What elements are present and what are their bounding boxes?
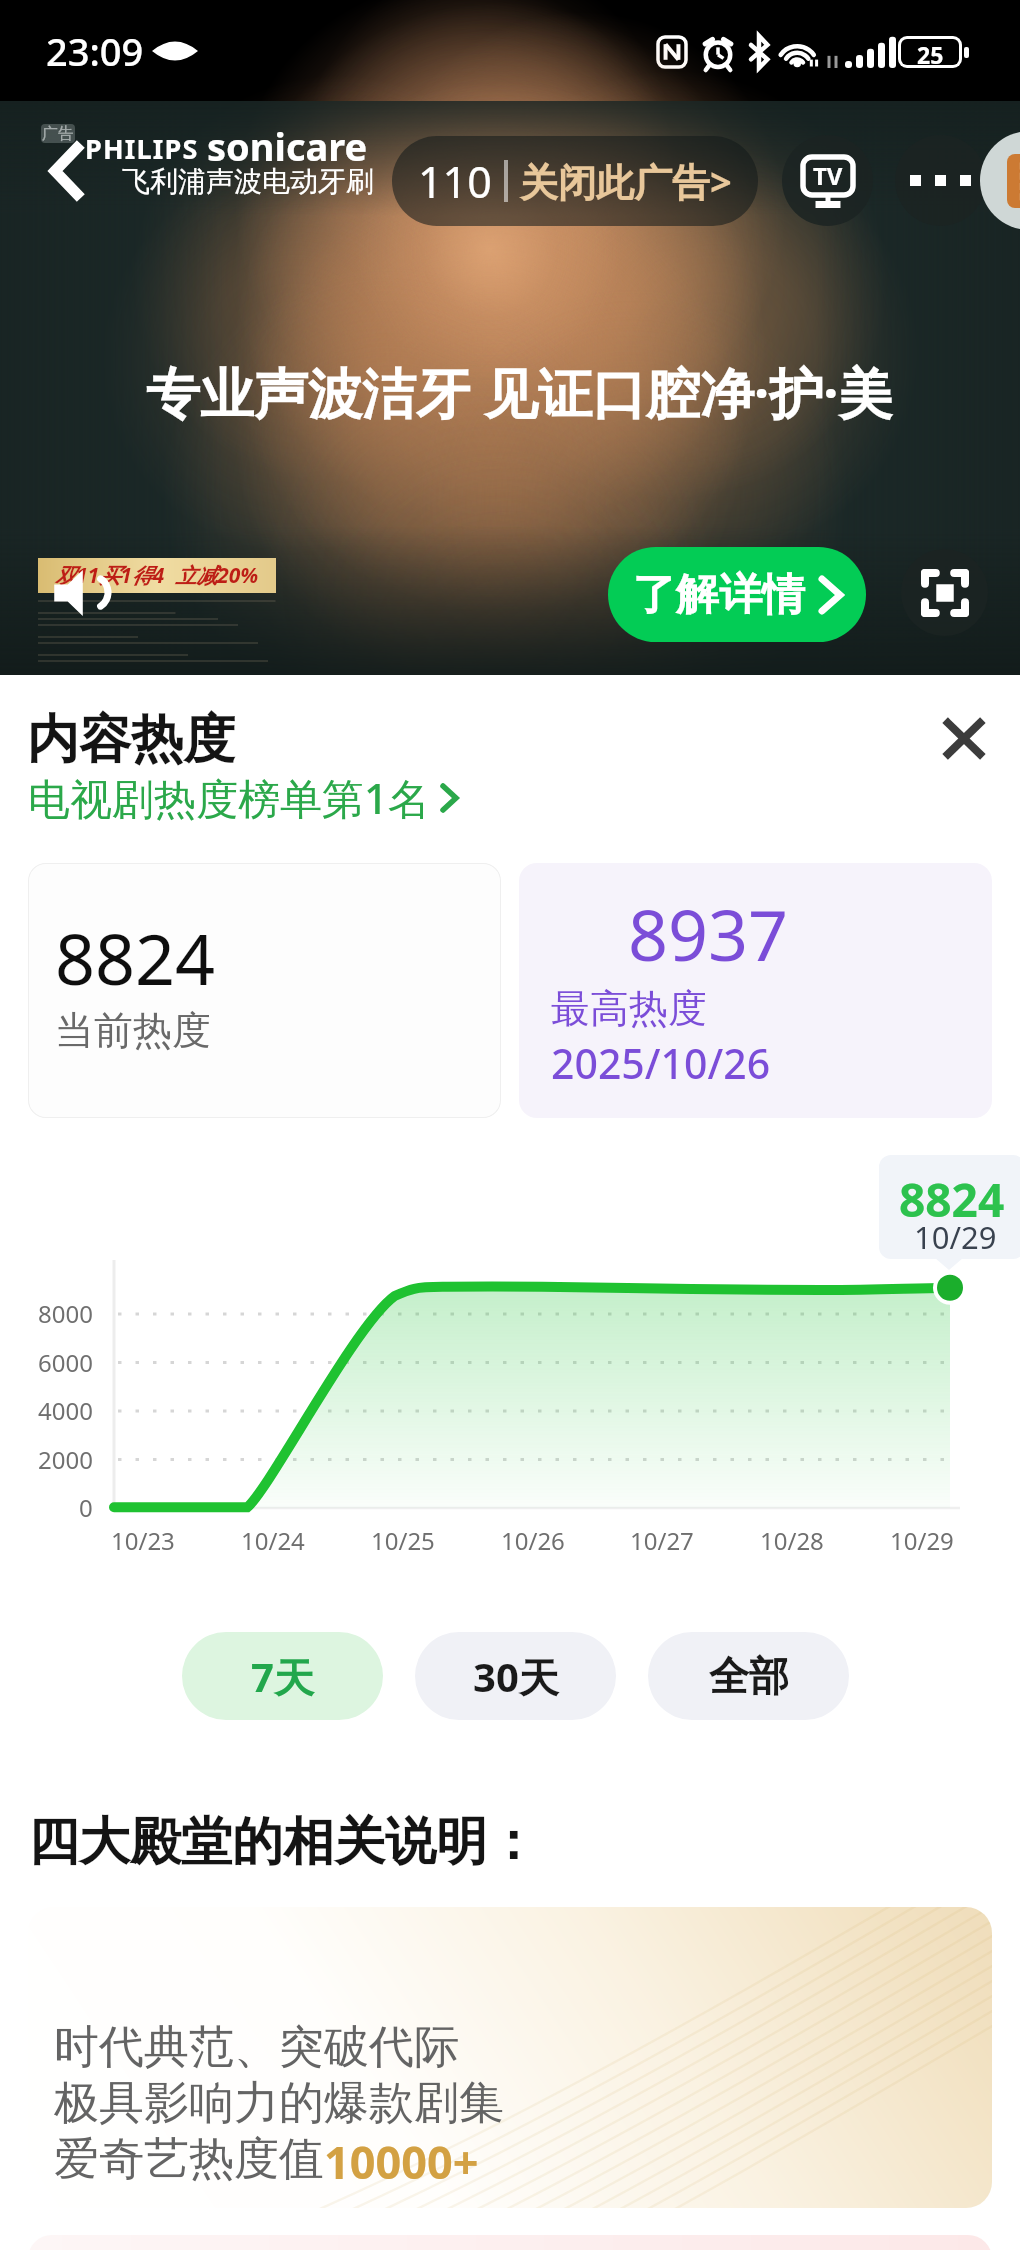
staticText: 飞利浦声波电动牙刷: [122, 164, 374, 199]
staticText: 10/25: [371, 1524, 435, 1557]
staticText: 双11买1得4 立减20%: [55, 561, 259, 590]
staticText: 关闭此广告>: [520, 155, 732, 207]
button[interactable]: Cast to TV: [782, 135, 873, 226]
staticText: 10/28: [760, 1524, 824, 1557]
button[interactable]: Close: [920, 694, 1008, 782]
staticText: 30天: [473, 1649, 559, 1704]
button[interactable]: Episode list: [980, 131, 1020, 230]
staticText: 当前热度: [55, 1006, 211, 1055]
button[interactable]: 8937: [519, 863, 992, 1118]
staticText: 爱奇艺热度值: [54, 2131, 324, 2188]
staticText: 2000: [38, 1443, 93, 1476]
staticText: 时代典范、突破代际: [54, 2019, 459, 2076]
staticText: 全部: [709, 1651, 789, 1701]
button[interactable]: 电视剧热度榜单第1名: [28, 769, 466, 826]
staticText: 电视剧热度榜单第1名: [28, 769, 431, 826]
staticText: 四大殿堂的相关说明：: [28, 1810, 538, 1874]
staticText: 专业声波洁牙 见证口腔净·护·美: [146, 355, 893, 429]
staticText: 8824: [55, 910, 216, 1005]
staticText: 10/29: [914, 1216, 997, 1258]
button[interactable]: 了解详情: [608, 547, 866, 642]
button[interactable]: 7天: [182, 1632, 383, 1720]
staticText: 10/26: [501, 1524, 565, 1557]
button[interactable]: Fullscreen: [901, 549, 988, 636]
staticText: 广告: [42, 124, 74, 143]
staticText: 内容热度: [27, 707, 235, 773]
button[interactable]: More options: [895, 135, 986, 226]
staticText: 8824: [899, 1168, 1005, 1231]
staticText: 110: [418, 152, 492, 211]
staticText: 8937: [628, 886, 789, 981]
staticText: 7天: [251, 1649, 314, 1704]
staticText: 0: [79, 1491, 93, 1524]
staticText: TV: [813, 159, 843, 192]
button[interactable]: [28, 2235, 992, 2250]
button[interactable]: Mute: [52, 568, 108, 618]
button[interactable]: 时代典范、突破代际: [28, 1907, 992, 2208]
button[interactable]: 30天: [415, 1632, 616, 1720]
staticText: 10/27: [630, 1524, 694, 1557]
button[interactable]: 8824: [28, 863, 501, 1118]
staticText: 4000: [38, 1394, 93, 1427]
staticText: 6000: [38, 1346, 93, 1379]
staticText: 8000: [38, 1297, 93, 1330]
staticText: 最高热度: [551, 984, 707, 1033]
staticText: 25: [917, 39, 944, 65]
button[interactable]: 110: [392, 136, 758, 226]
staticText: sonicare: [207, 120, 368, 172]
staticText: 极具影响力的爆款剧集: [54, 2075, 504, 2132]
staticText: 了解详情: [633, 568, 805, 622]
button[interactable]: 全部: [648, 1632, 849, 1720]
staticText: 10000+: [324, 2131, 479, 2192]
staticText: 2025/10/26: [551, 1035, 771, 1091]
button[interactable]: Back: [22, 127, 110, 215]
staticText: 10/23: [111, 1524, 175, 1557]
staticText: 10/29: [890, 1524, 954, 1557]
staticText: 10/24: [241, 1524, 305, 1557]
staticText: 23:09: [46, 25, 144, 77]
staticText: PHILIPS: [85, 130, 199, 167]
